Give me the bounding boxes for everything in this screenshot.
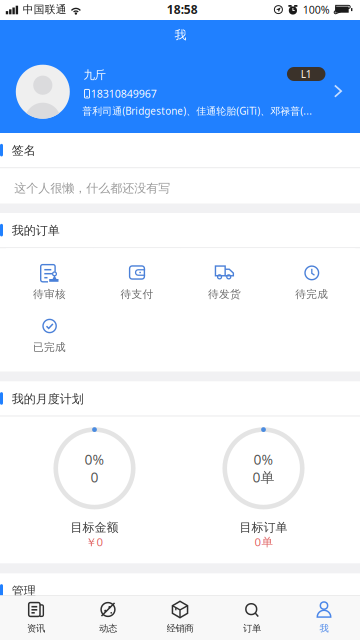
staticText: 动态 (99, 623, 117, 634)
staticText: 0% (253, 450, 273, 469)
staticText: 我 (174, 27, 186, 43)
button[interactable]: 待支付 (93, 248, 181, 301)
staticText: 待完成 (295, 287, 328, 301)
staticText: 0 (90, 468, 98, 487)
staticText: 待发货 (208, 287, 241, 301)
button[interactable]: 九斤 (0, 50, 360, 133)
button[interactable]: 已完成 (6, 301, 93, 355)
staticText: 签名 (12, 143, 36, 158)
button[interactable]: 订单 (216, 596, 288, 640)
button[interactable]: 待审核 (6, 248, 93, 301)
staticText: 订单 (243, 623, 261, 634)
staticText: 经销商 (166, 623, 193, 634)
staticText: 18310849967 (91, 86, 157, 101)
staticText: 目标金额 (70, 520, 118, 535)
staticText: 待支付 (120, 287, 153, 301)
staticText: 我的订单 (12, 223, 60, 238)
staticText: 普利司通(Bridgestone)、佳通轮胎(GiTi)、邓禄普(... (82, 104, 312, 118)
staticText: 这个人很懒，什么都还没有写 (14, 181, 170, 196)
button[interactable]: 待发货 (181, 248, 268, 301)
staticText: 九斤 (83, 68, 105, 82)
staticText: 0% (84, 450, 104, 469)
staticText: 0单 (252, 468, 274, 487)
staticText: 待审核 (33, 287, 66, 301)
staticText: 目标订单 (239, 520, 287, 535)
staticText: 0单 (254, 534, 272, 550)
staticText: 100% (303, 2, 330, 17)
button[interactable]: 我 (288, 596, 360, 640)
staticText: 我的月度计划 (12, 391, 84, 406)
staticText: 18:58 (167, 1, 198, 17)
staticText: L1 (301, 67, 312, 81)
staticText: 管理 (12, 583, 36, 598)
staticText: ￥0 (85, 534, 103, 550)
staticText: 已完成 (33, 341, 66, 354)
button[interactable]: 经销商 (144, 596, 216, 640)
button[interactable]: 动态 (72, 596, 144, 640)
button[interactable]: 待完成 (268, 248, 355, 301)
staticText: 中国联通 (23, 3, 67, 16)
staticText: 资讯 (27, 623, 45, 634)
button[interactable]: 资讯 (0, 596, 72, 640)
staticText: 我 (319, 623, 328, 634)
